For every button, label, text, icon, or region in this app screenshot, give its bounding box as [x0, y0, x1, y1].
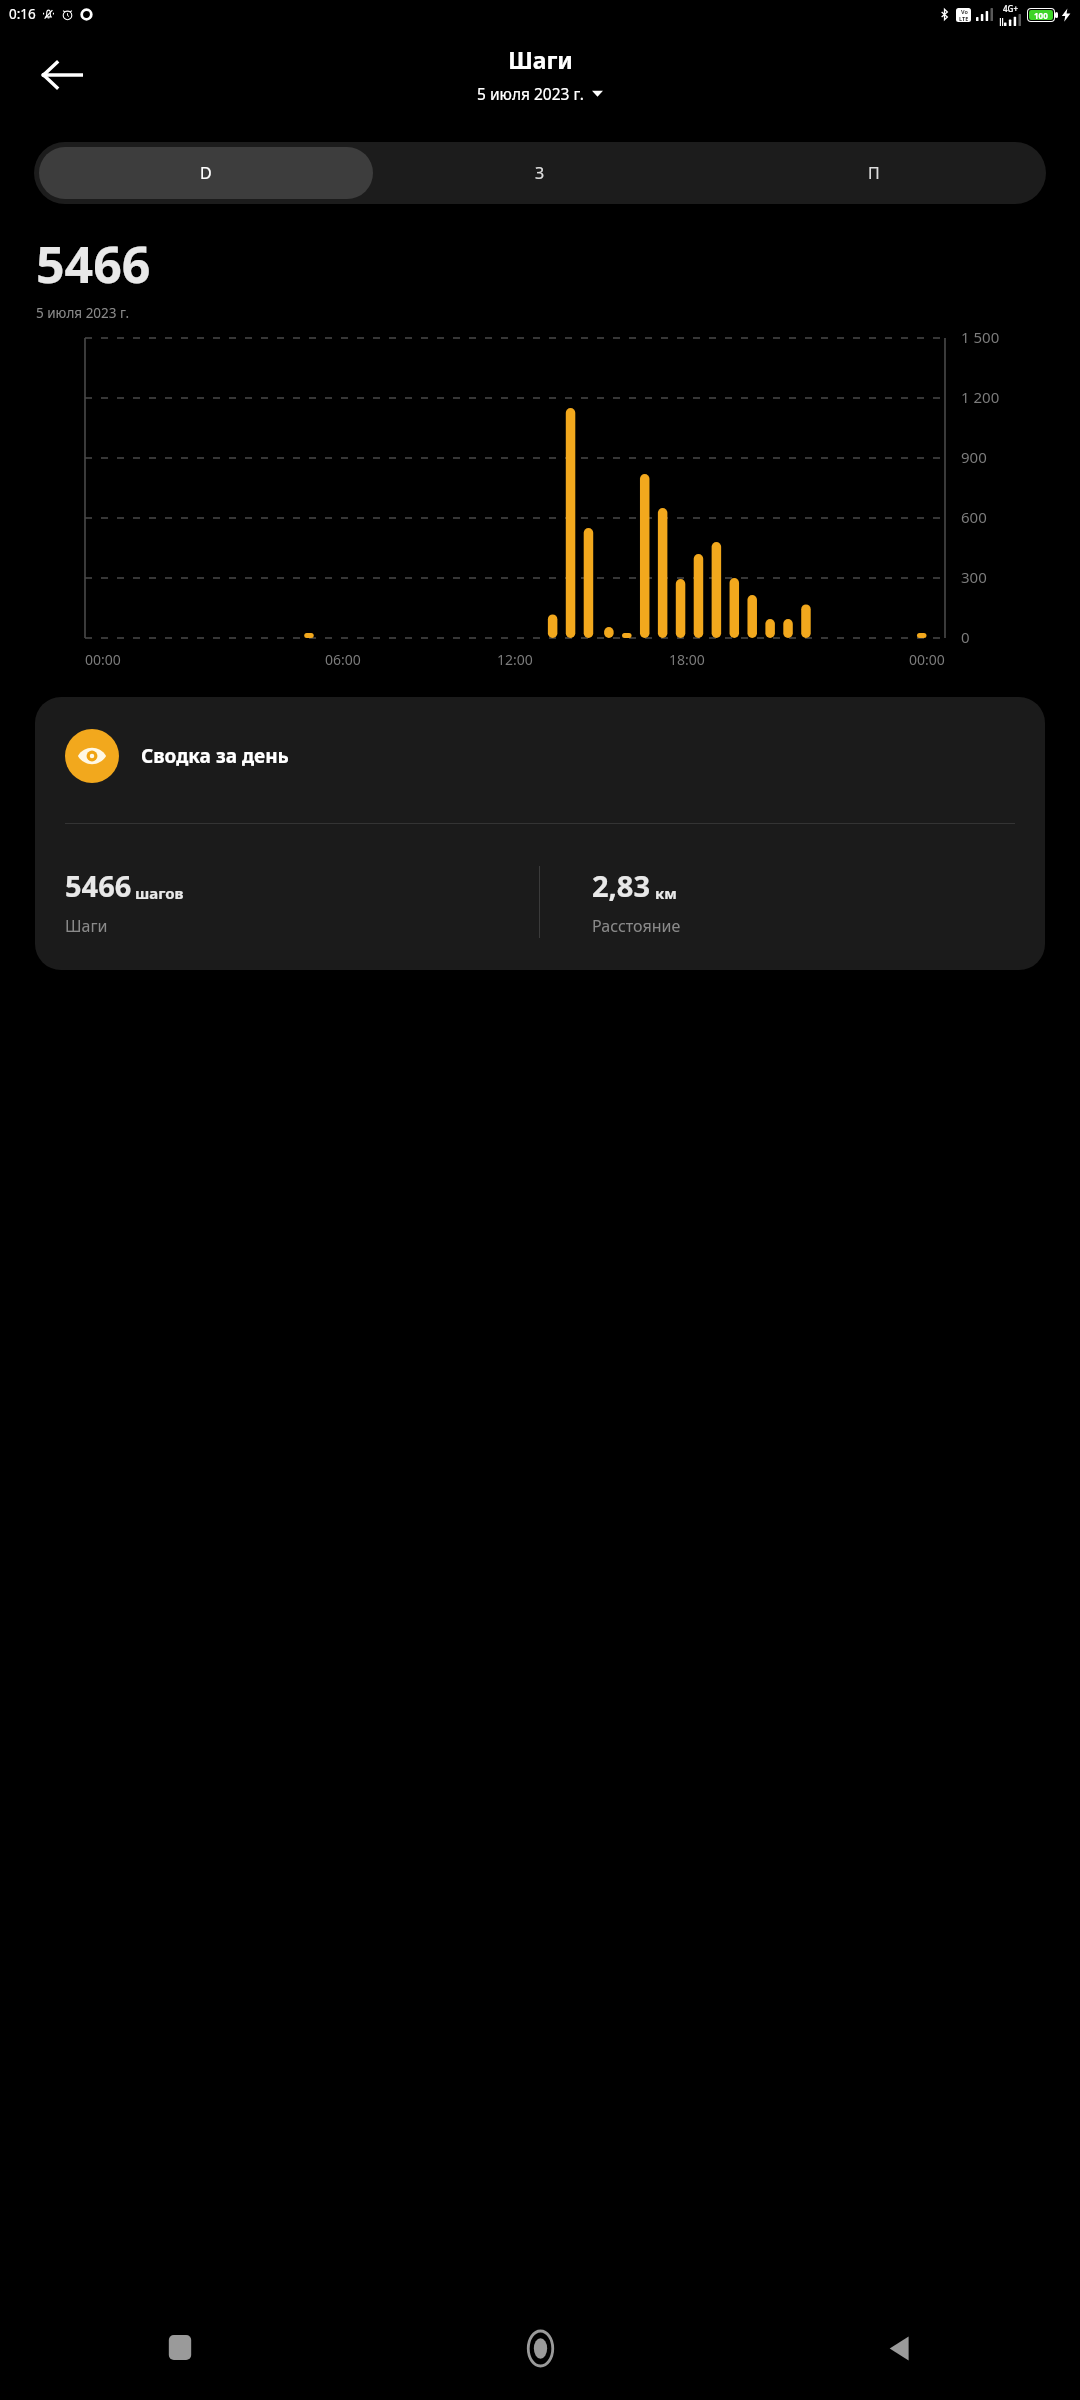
button[interactable]: D [39, 147, 373, 199]
staticText: З [535, 162, 545, 184]
staticText: 1 200 [961, 387, 1000, 407]
staticText: 600 [961, 507, 987, 527]
staticText: 00:00 [909, 650, 945, 669]
staticText: 100 [1034, 10, 1048, 20]
staticText: 5 июля 2023 г. [477, 83, 584, 104]
staticText: 18:00 [669, 650, 705, 669]
staticText: шагов [135, 883, 184, 903]
staticText: 300 [961, 567, 987, 587]
staticText: 00:00 [85, 650, 121, 669]
staticText: Vo [961, 8, 968, 15]
button[interactable]: З [373, 147, 707, 199]
staticText: 1 500 [961, 327, 1000, 347]
staticText: 900 [961, 447, 987, 467]
staticText: 5466 [65, 866, 132, 905]
button[interactable]: П [707, 147, 1041, 199]
staticText: 4G+ [1003, 3, 1018, 14]
staticText: 5 июля 2023 г. [36, 304, 130, 322]
staticText: Расстояние [592, 915, 681, 937]
staticText: Сводка за день [141, 743, 289, 769]
staticText: Шаги [65, 915, 108, 937]
staticText: П [868, 162, 880, 184]
button[interactable]: Сводка за день [35, 697, 1045, 970]
staticText: 0:16 [9, 5, 36, 23]
staticText: 0 [961, 627, 970, 647]
staticText: D [200, 162, 212, 184]
button[interactable]: Главный экран [360, 2296, 720, 2400]
button[interactable]: Назад [720, 2296, 1080, 2400]
staticText: Шаги [508, 44, 573, 75]
staticText: км [655, 883, 677, 903]
staticText: LTE [959, 15, 969, 22]
staticText: 12:00 [497, 650, 533, 669]
button[interactable]: Назад [34, 47, 90, 103]
staticText: 06:00 [325, 650, 361, 669]
staticText: 5466 [36, 230, 151, 298]
button[interactable]: 5 июля 2023 г. [471, 81, 609, 106]
staticText: 2,83 [592, 866, 651, 905]
button[interactable]: Обзор [0, 2296, 360, 2400]
